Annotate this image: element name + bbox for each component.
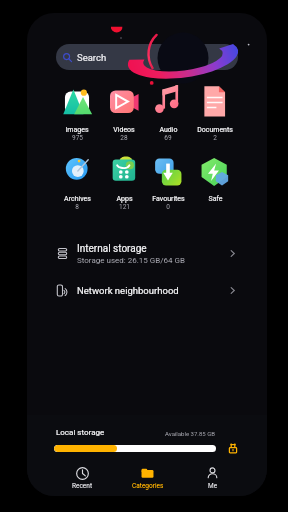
staticText: Local storage xyxy=(56,428,105,437)
staticText: Categories xyxy=(132,482,164,490)
button[interactable]: Archives xyxy=(51,158,103,214)
staticText: Internal storage xyxy=(77,243,147,255)
button[interactable]: Network neighbourhood xyxy=(56,272,238,309)
staticText: Recent xyxy=(72,482,93,490)
staticText: Available 37.85 GB xyxy=(165,430,215,437)
staticText: Storage used: 26.15 GB/64 GB xyxy=(77,256,185,265)
staticText: Me xyxy=(208,482,218,490)
button[interactable]: Safe xyxy=(189,158,241,214)
button[interactable]: Search xyxy=(56,44,238,70)
staticText: 69 xyxy=(164,134,172,142)
staticText: Apps xyxy=(116,195,133,203)
button[interactable]: Audio xyxy=(142,89,194,145)
staticText: Favourites xyxy=(152,195,185,203)
button[interactable]: Favourites xyxy=(142,158,194,214)
staticText: Search xyxy=(77,52,107,63)
button[interactable]: Images xyxy=(51,89,103,145)
staticText: 0 xyxy=(166,203,170,211)
staticText: Network neighbourhood xyxy=(77,285,179,296)
button[interactable]: Me xyxy=(180,466,245,496)
staticText: Audio xyxy=(159,126,178,134)
button[interactable]: Recent xyxy=(49,466,115,496)
staticText: Documents xyxy=(197,126,233,134)
staticText: Safe xyxy=(208,195,223,203)
staticText: 8 xyxy=(75,203,79,211)
staticText: Videos xyxy=(113,126,135,134)
staticText: 2 xyxy=(213,134,217,142)
button[interactable]: Clean up storage xyxy=(227,442,239,454)
button[interactable]: Categories xyxy=(115,466,180,496)
button[interactable]: Documents xyxy=(189,89,241,145)
staticText: Images xyxy=(65,126,89,134)
staticText: 28 xyxy=(120,134,128,142)
button[interactable]: Videos xyxy=(98,89,150,145)
staticText: Archives xyxy=(64,195,91,203)
staticText: 975 xyxy=(72,134,83,142)
staticText: 121 xyxy=(119,203,130,211)
button[interactable]: Apps xyxy=(98,158,150,214)
button[interactable]: Internal storage xyxy=(56,235,238,272)
